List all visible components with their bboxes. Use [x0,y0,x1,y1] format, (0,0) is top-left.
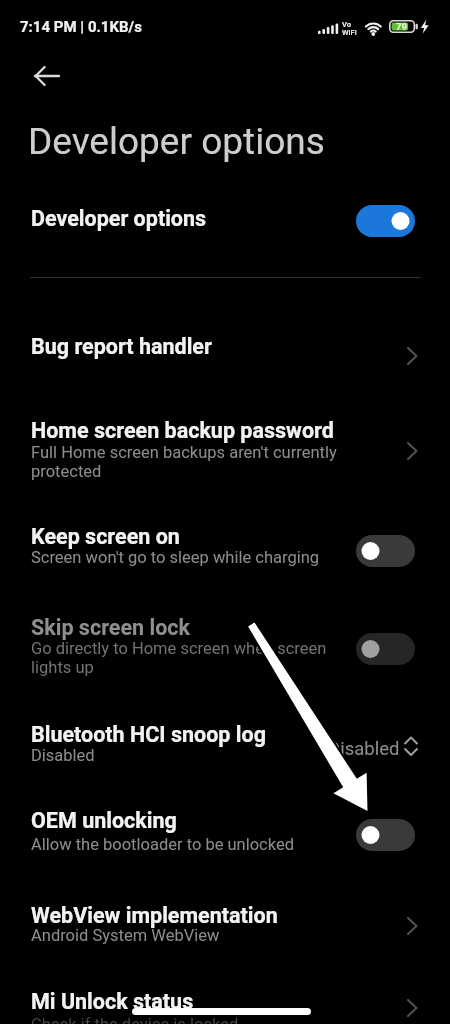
button[interactable] [356,205,415,237]
staticText: Screen won't go to sleep while charging [31,548,320,567]
staticText: WebView implementation [31,903,278,928]
staticText: Bluetooth HCI snoop log [31,722,266,747]
button[interactable] [356,633,415,665]
staticText: Vo WiFi [342,20,357,37]
button[interactable]: Mi Unlock status [0,982,450,1024]
staticText: lights up [31,658,94,677]
staticText: Home screen backup password [31,418,334,443]
button[interactable]: Home screen backup password [0,405,450,495]
staticText: Go directly to Home screen when screen [31,639,327,658]
staticText: Check if the device is locked [31,1015,239,1024]
staticText: Bug report handler [31,334,212,359]
staticText: Disabled [31,746,95,765]
button[interactable] [22,58,70,94]
button[interactable] [356,819,415,851]
staticText: Android System WebView [31,926,220,945]
button[interactable]: OEM unlocking [0,800,450,866]
staticText: Developer options [31,206,207,231]
staticText: Full Home screen backups aren't currentl… [31,443,337,462]
staticText: Keep screen on [31,524,180,549]
staticText: 7:14 PM | 0.1KB/s [20,18,142,36]
button[interactable]: Developer options [0,192,450,250]
staticText: OEM unlocking [31,808,177,833]
button[interactable]: WebView implementation [0,895,450,959]
staticText: Allow the bootloader to be unlocked [31,835,295,854]
button[interactable]: Skip screen lock [0,605,450,693]
button[interactable]: Bug report handler [0,318,450,376]
staticText: 79 [396,21,407,32]
staticText: Developer options [28,120,325,163]
button[interactable] [356,535,415,567]
staticText: Disabled [328,738,400,760]
button[interactable]: Keep screen on [0,515,450,585]
staticText: Mi Unlock status [31,989,194,1014]
button[interactable]: Bluetooth HCI snoop log [0,715,450,781]
staticText: protected [31,462,102,481]
staticText: Skip screen lock [31,615,191,640]
